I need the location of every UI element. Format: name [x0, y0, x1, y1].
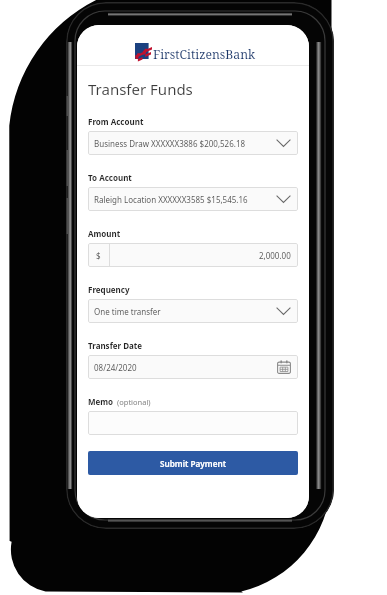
button[interactable]: One time transfer	[88, 299, 298, 323]
staticText: Raleigh Location XXXXXX3585 $15,545.16	[94, 194, 248, 205]
staticText: Business Draw XXXXXX3886 $200,526.18	[94, 138, 246, 149]
button[interactable]: Raleigh Location XXXXXX3585 $15,545.16	[88, 187, 298, 211]
staticText: (optional)	[117, 397, 151, 407]
staticText: From Account	[88, 116, 144, 127]
staticText: Memo	[88, 396, 114, 407]
button[interactable]: 08/24/2020	[88, 355, 298, 379]
staticText: Frequency	[88, 284, 130, 295]
staticText: One time transfer	[94, 306, 161, 317]
button[interactable]	[88, 411, 298, 435]
staticText: 08/24/2020	[94, 362, 137, 373]
button[interactable]: Business Draw XXXXXX3886 $200,526.18	[88, 131, 298, 155]
button[interactable]: Submit Payment	[88, 451, 298, 475]
button[interactable]: $	[88, 243, 298, 267]
staticText: FirstCitizensBank	[153, 46, 256, 63]
staticText: Submit Payment	[160, 458, 226, 469]
staticText: To Account	[88, 172, 132, 183]
staticText: Transfer Date	[88, 340, 143, 351]
staticText: Amount	[88, 228, 121, 239]
staticText: $	[96, 250, 101, 261]
button[interactable]: Choose transfer date	[277, 360, 291, 374]
staticText: Transfer Funds	[88, 79, 193, 99]
staticText: 2,000.00	[259, 250, 291, 261]
